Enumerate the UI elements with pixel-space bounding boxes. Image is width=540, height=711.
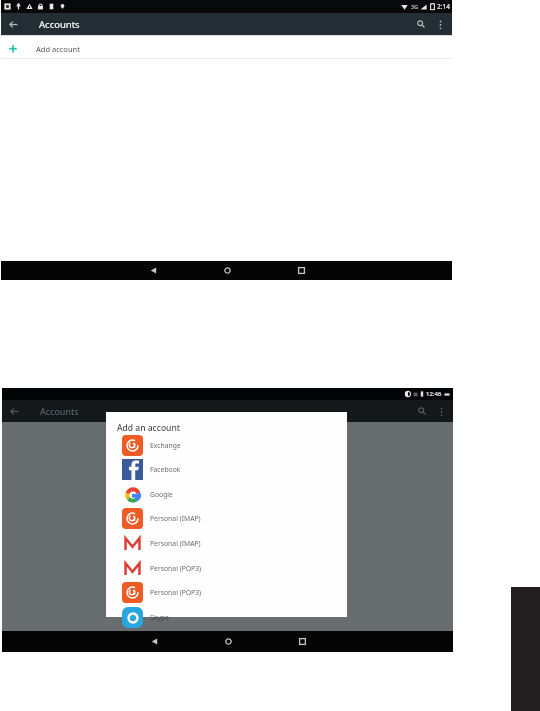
staticText: Accounts [40, 405, 79, 417]
button[interactable]: Exchange [106, 434, 347, 456]
button[interactable]: Back [143, 261, 163, 280]
staticText: 2:14 [437, 2, 450, 11]
button[interactable]: Facebook [106, 458, 347, 480]
button[interactable]: Search [410, 13, 432, 35]
staticText: Exchange [150, 441, 181, 450]
staticText: Google [150, 490, 173, 499]
button[interactable]: Navigate up [2, 400, 26, 422]
button[interactable]: More options [432, 13, 449, 35]
staticText: Personal (POP3) [150, 588, 202, 597]
staticText: 3G [411, 3, 419, 10]
button[interactable]: More options [433, 400, 450, 422]
staticText: Accounts [39, 18, 80, 31]
button[interactable]: Skype [106, 606, 347, 628]
button[interactable]: Search [411, 400, 433, 422]
button[interactable]: Personal (POP3) [106, 557, 347, 579]
button[interactable]: Google [106, 483, 347, 505]
staticText: Add account [36, 44, 80, 54]
staticText: Skype [150, 613, 169, 622]
button[interactable]: Home [218, 631, 238, 652]
button[interactable]: Back [144, 631, 164, 652]
button[interactable]: Add account [1, 36, 452, 58]
button[interactable]: Personal (IMAP) [106, 532, 347, 554]
staticText: Personal (POP3) [150, 564, 202, 573]
button[interactable]: Recent apps [292, 631, 312, 652]
staticText: Personal (IMAP) [150, 514, 201, 523]
button[interactable]: Recent apps [291, 261, 311, 280]
staticText: Add an account [117, 422, 181, 434]
button[interactable]: Navigate up [1, 13, 25, 35]
staticText: Facebook [150, 465, 181, 474]
button[interactable]: Personal (IMAP) [106, 507, 347, 529]
staticText: 12:46 [426, 390, 442, 398]
button[interactable]: Personal (POP3) [106, 581, 347, 603]
button[interactable]: Home [217, 261, 237, 280]
staticText: Personal (IMAP) [150, 539, 201, 548]
